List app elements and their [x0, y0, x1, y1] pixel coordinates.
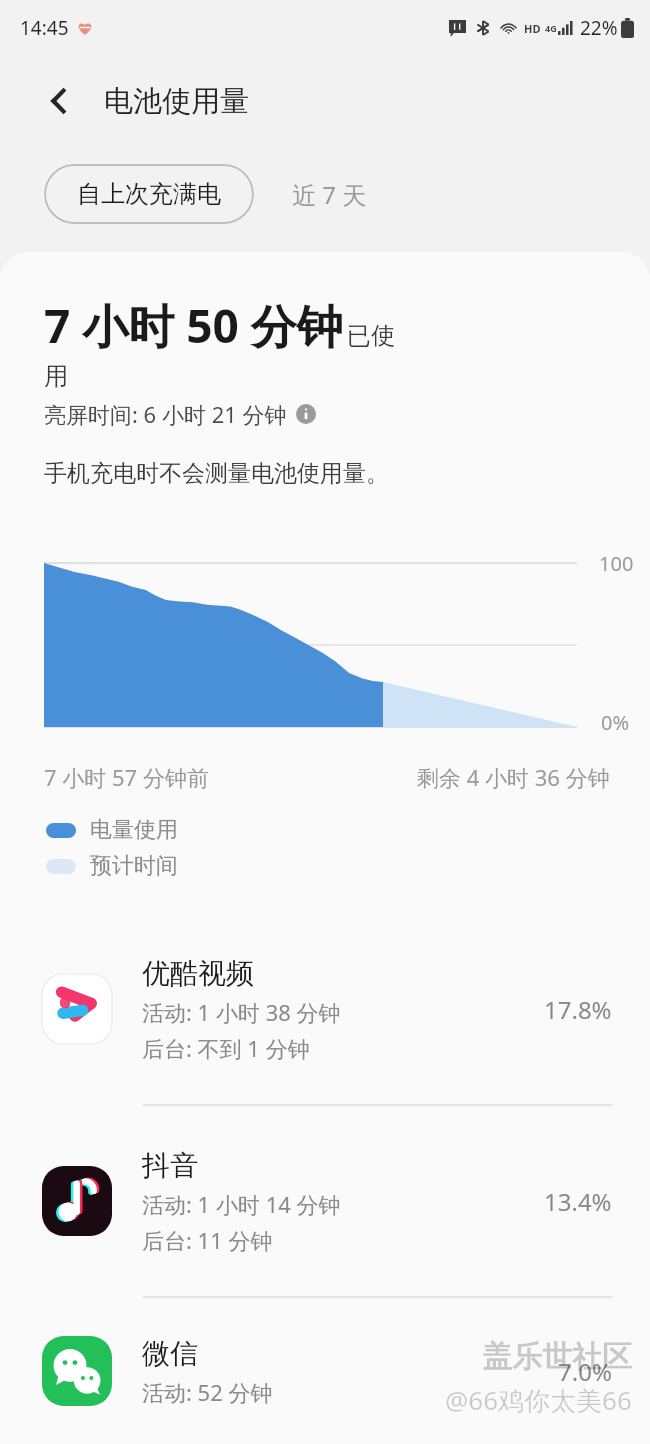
staticText: 22%	[580, 15, 618, 41]
staticText: 亮屏时间: 6 小时 21 分钟	[44, 399, 287, 429]
staticText: 抖音	[142, 1148, 198, 1183]
staticText: 7 小时 57 分钟前	[44, 762, 209, 792]
staticText: 后台: 11 分钟	[142, 1225, 273, 1255]
staticText: 活动: 1 小时 14 分钟	[142, 1189, 341, 1219]
button[interactable]: 近 7 天	[254, 164, 405, 224]
staticText: 14:45	[20, 15, 69, 41]
staticText: 用	[44, 361, 68, 391]
staticText: 手机充电时不会测量电池使用量。	[44, 459, 389, 488]
staticText: 100	[599, 550, 634, 577]
staticText: 7.0%	[558, 1355, 612, 1388]
staticText: 13.4%	[544, 1185, 612, 1218]
staticText: 近 7 天	[292, 178, 367, 211]
staticText: @66鸡你太美66	[445, 1382, 632, 1418]
staticText: 7 小时 50 分钟	[44, 294, 343, 357]
button[interactable]: 抖音	[0, 1106, 650, 1296]
button[interactable]: 微信	[0, 1298, 650, 1444]
staticText: 0%	[601, 709, 630, 736]
staticText: 预计时间	[90, 852, 178, 880]
staticText: 17.8%	[544, 993, 612, 1026]
staticText: 活动: 1 小时 38 分钟	[142, 997, 341, 1027]
staticText: 自上次充满电	[77, 179, 221, 209]
button[interactable]: Back	[36, 78, 82, 124]
button[interactable]: Info	[295, 403, 317, 425]
staticText: 已使	[347, 321, 395, 351]
staticText: 电池使用量	[104, 83, 249, 120]
staticText: 优酷视频	[142, 956, 254, 991]
staticText: HD	[524, 21, 541, 36]
staticText: 后台: 不到 1 分钟	[142, 1033, 310, 1063]
button[interactable]: 优酷视频	[0, 914, 650, 1104]
staticText: 剩余 4 小时 36 分钟	[417, 762, 610, 792]
staticText: 4G	[545, 22, 557, 34]
staticText: 微信	[142, 1336, 198, 1371]
staticText: 盖乐世社区	[482, 1338, 632, 1376]
staticText: 活动: 52 分钟	[142, 1377, 273, 1407]
button[interactable]: 自上次充满电	[44, 164, 254, 224]
staticText: 电量使用	[90, 816, 178, 844]
